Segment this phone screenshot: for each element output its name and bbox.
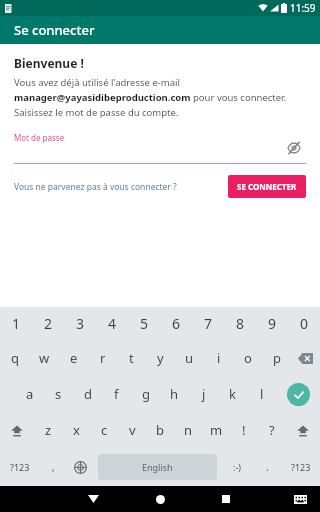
button[interactable]: s [44,376,73,412]
staticText: 2 [44,314,53,333]
staticText: ? [269,421,275,439]
button[interactable]: ?123 [0,448,40,486]
staticText: n [184,421,193,439]
button[interactable]: English [98,454,217,480]
staticText: ?123 [291,461,311,473]
button[interactable]: 1 [0,307,32,340]
staticText: j [202,385,206,403]
button[interactable]: r [88,340,117,376]
button[interactable]: q [0,340,30,376]
staticText: w [39,349,50,367]
button[interactable]: k [218,376,247,412]
staticText: Vous avez déjà utilisé l'adresse e-mail … [14,76,306,119]
staticText: g [142,385,150,403]
staticText: 6 [172,314,181,333]
staticText: . [266,460,269,474]
button[interactable]: Retour [82,488,104,510]
button[interactable]: l [247,376,276,412]
button[interactable]: m [202,412,230,448]
button[interactable]: 6 [160,307,192,340]
button[interactable]: h [160,376,189,412]
button[interactable]: 0 [288,307,320,340]
button[interactable]: j [189,376,218,412]
button[interactable]: 3 [64,307,96,340]
button[interactable]: d [73,376,102,412]
staticText: m [210,421,223,439]
staticText: ! [242,421,246,439]
staticText: z [45,421,52,439]
staticText: 11:59 [290,1,316,15]
staticText: o [244,349,252,367]
staticText: e [70,349,78,367]
button[interactable]: ! [230,412,258,448]
staticText: 4 [108,314,117,333]
button[interactable]: t [117,340,146,376]
button[interactable]: Applications récentes [215,488,237,510]
button[interactable]: ?123 [281,448,320,486]
button[interactable]: Valider [276,376,320,412]
button[interactable]: Changer de langue [67,448,94,486]
button[interactable]: . [254,448,281,486]
button[interactable]: 4 [96,307,128,340]
staticText: :-) [233,461,242,473]
button[interactable]: 2 [32,307,64,340]
staticText: s [55,385,62,403]
staticText: r [100,349,106,367]
button[interactable]: i [204,340,233,376]
button[interactable]: 8 [224,307,256,340]
staticText: Se connecter [14,21,95,39]
button[interactable]: Majuscule [286,412,320,448]
button[interactable]: Vous ne parvenez pas à vous connecter ? [14,178,177,196]
staticText: 1 [12,314,21,333]
staticText: u [185,349,194,367]
button[interactable]: n [174,412,202,448]
button[interactable]: f [102,376,131,412]
staticText: 8 [236,314,245,333]
button[interactable]: z [34,412,62,448]
button[interactable]: Supprimer [291,340,320,376]
button[interactable]: b [146,412,174,448]
button[interactable]: :-) [221,448,254,486]
button[interactable]: o [233,340,262,376]
staticText: p [273,349,281,367]
button[interactable]: p [262,340,291,376]
staticText: ?123 [10,461,30,473]
button[interactable]: g [131,376,160,412]
button[interactable]: 5 [128,307,160,340]
staticText: , [52,460,55,474]
staticText: c [101,421,108,439]
button[interactable]: Clavier [290,489,310,509]
staticText: Vous ne parvenez pas à vous connecter ? [14,181,177,193]
button[interactable]: y [146,340,175,376]
staticText: d [84,385,92,403]
button[interactable]: Afficher le mot de passe [286,140,302,156]
staticText: 0 [300,314,309,333]
staticText: h [170,385,179,403]
staticText: f [114,385,119,403]
button[interactable]: v [118,412,146,448]
button[interactable]: e [59,340,88,376]
button[interactable]: SE CONNECTER [228,175,306,198]
staticText: English [142,461,173,473]
button[interactable]: Mot de passe [14,132,306,164]
staticText: q [11,349,19,367]
button[interactable]: Majuscule [0,412,34,448]
button[interactable]: Accueil [149,488,171,510]
button[interactable]: u [175,340,204,376]
button[interactable]: x [62,412,90,448]
staticText: y [157,349,164,367]
staticText: Mot de passe [14,132,65,143]
staticText: SE CONNECTER [237,181,297,192]
staticText: b [156,421,164,439]
staticText: t [129,349,134,367]
button[interactable]: c [90,412,118,448]
button[interactable]: 9 [256,307,288,340]
button[interactable]: , [40,448,67,486]
staticText: a [26,385,34,403]
button[interactable]: w [30,340,59,376]
button[interactable]: 7 [192,307,224,340]
staticText: k [229,385,236,403]
staticText: 3 [76,314,85,333]
button[interactable]: ? [258,412,286,448]
button[interactable]: a [15,376,44,412]
